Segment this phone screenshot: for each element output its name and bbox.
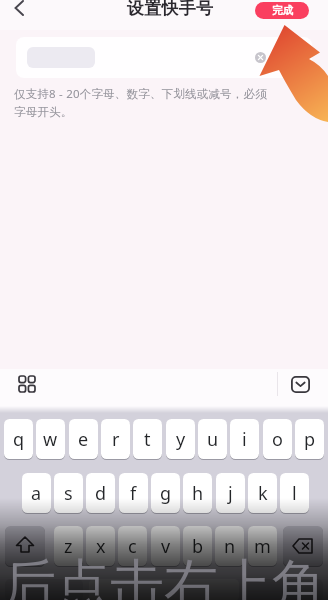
staticText: z	[64, 534, 73, 559]
staticText: s	[64, 481, 73, 506]
staticText: m	[254, 534, 271, 559]
staticText: x	[96, 534, 106, 559]
button[interactable]: x	[86, 526, 115, 566]
staticText: j	[228, 481, 233, 506]
staticText: q	[13, 427, 25, 452]
staticText: 完成	[272, 4, 293, 17]
button[interactable]	[89, 579, 239, 600]
button[interactable]: q	[4, 419, 33, 459]
staticText: t	[144, 427, 151, 452]
staticText: r	[112, 427, 120, 452]
button[interactable]: r	[101, 419, 130, 459]
button[interactable]: c	[118, 526, 147, 566]
button[interactable]: o	[263, 419, 292, 459]
staticText: p	[304, 427, 316, 452]
staticText: v	[161, 534, 171, 559]
button[interactable]: e	[69, 419, 98, 459]
button[interactable]	[10, 0, 30, 22]
button[interactable]	[245, 579, 323, 600]
button[interactable]	[16, 37, 312, 78]
button[interactable]: s	[54, 473, 83, 513]
button[interactable]	[5, 526, 45, 566]
button[interactable]: k	[248, 473, 277, 513]
staticText: 仅支持8 - 20个字母、数字、下划线或减号，必须 字母开头。	[14, 86, 328, 120]
staticText: w	[43, 427, 58, 452]
staticText: d	[95, 481, 107, 506]
staticText: e	[78, 427, 89, 452]
button[interactable]	[291, 376, 310, 393]
button[interactable]: v	[151, 526, 180, 566]
staticText: o	[272, 427, 283, 452]
button[interactable]: p	[295, 419, 324, 459]
button[interactable]: 完成	[255, 2, 309, 19]
staticText: u	[207, 427, 219, 452]
button[interactable]: l	[280, 473, 309, 513]
button[interactable]: u	[198, 419, 227, 459]
staticText: a	[31, 481, 42, 506]
staticText: b	[192, 534, 204, 559]
button[interactable]: a	[22, 473, 51, 513]
button[interactable]	[5, 579, 83, 600]
button[interactable]: j	[216, 473, 245, 513]
staticText: 后点击右上角	[0, 551, 328, 600]
button[interactable]: h	[183, 473, 212, 513]
staticText: i	[242, 427, 247, 452]
button[interactable]: b	[183, 526, 212, 566]
staticText: l	[292, 481, 297, 506]
button[interactable]: g	[151, 473, 180, 513]
button[interactable]: m	[248, 526, 277, 566]
button[interactable]: t	[133, 419, 162, 459]
button[interactable]: z	[54, 526, 83, 566]
button[interactable]	[283, 526, 323, 566]
staticText: h	[192, 481, 204, 506]
button[interactable]: i	[230, 419, 259, 459]
button[interactable]	[255, 52, 266, 63]
staticText: g	[160, 481, 172, 506]
staticText: n	[224, 534, 236, 559]
staticText: k	[258, 481, 268, 506]
button[interactable]: y	[166, 419, 195, 459]
button[interactable]: f	[119, 473, 148, 513]
button[interactable]	[19, 376, 35, 392]
staticText: 设置快手号	[6, 0, 328, 19]
button[interactable]: d	[86, 473, 115, 513]
staticText: c	[128, 534, 137, 559]
staticText: y	[176, 427, 186, 452]
button[interactable]: n	[215, 526, 244, 566]
staticText: f	[130, 481, 137, 506]
button[interactable]: w	[36, 419, 65, 459]
